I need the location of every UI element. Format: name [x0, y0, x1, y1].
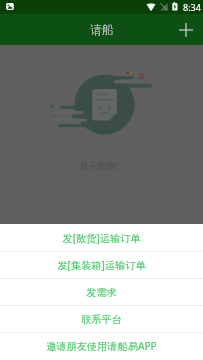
- staticText: 请船: [90, 22, 114, 37]
- staticText: 邀请朋友使用请船易APP: [46, 339, 157, 353]
- staticText: 发[集装箱]运输订单: [57, 258, 146, 272]
- button[interactable]: Add: [169, 14, 203, 45]
- staticText: 暂无数据!: [80, 160, 118, 172]
- button[interactable]: 发需求: [0, 279, 203, 305]
- button[interactable]: 发[集装箱]运输订单: [0, 252, 203, 278]
- button[interactable]: 发[散货]运输订单: [0, 224, 203, 251]
- staticText: 联系平台: [81, 313, 122, 326]
- staticText: 发需求: [86, 286, 117, 299]
- button[interactable]: 联系平台: [0, 306, 203, 332]
- staticText: 发[散货]运输订单: [62, 231, 141, 245]
- staticText: 8:34: [183, 1, 201, 13]
- button[interactable]: 邀请朋友使用请船易APP: [0, 333, 203, 359]
